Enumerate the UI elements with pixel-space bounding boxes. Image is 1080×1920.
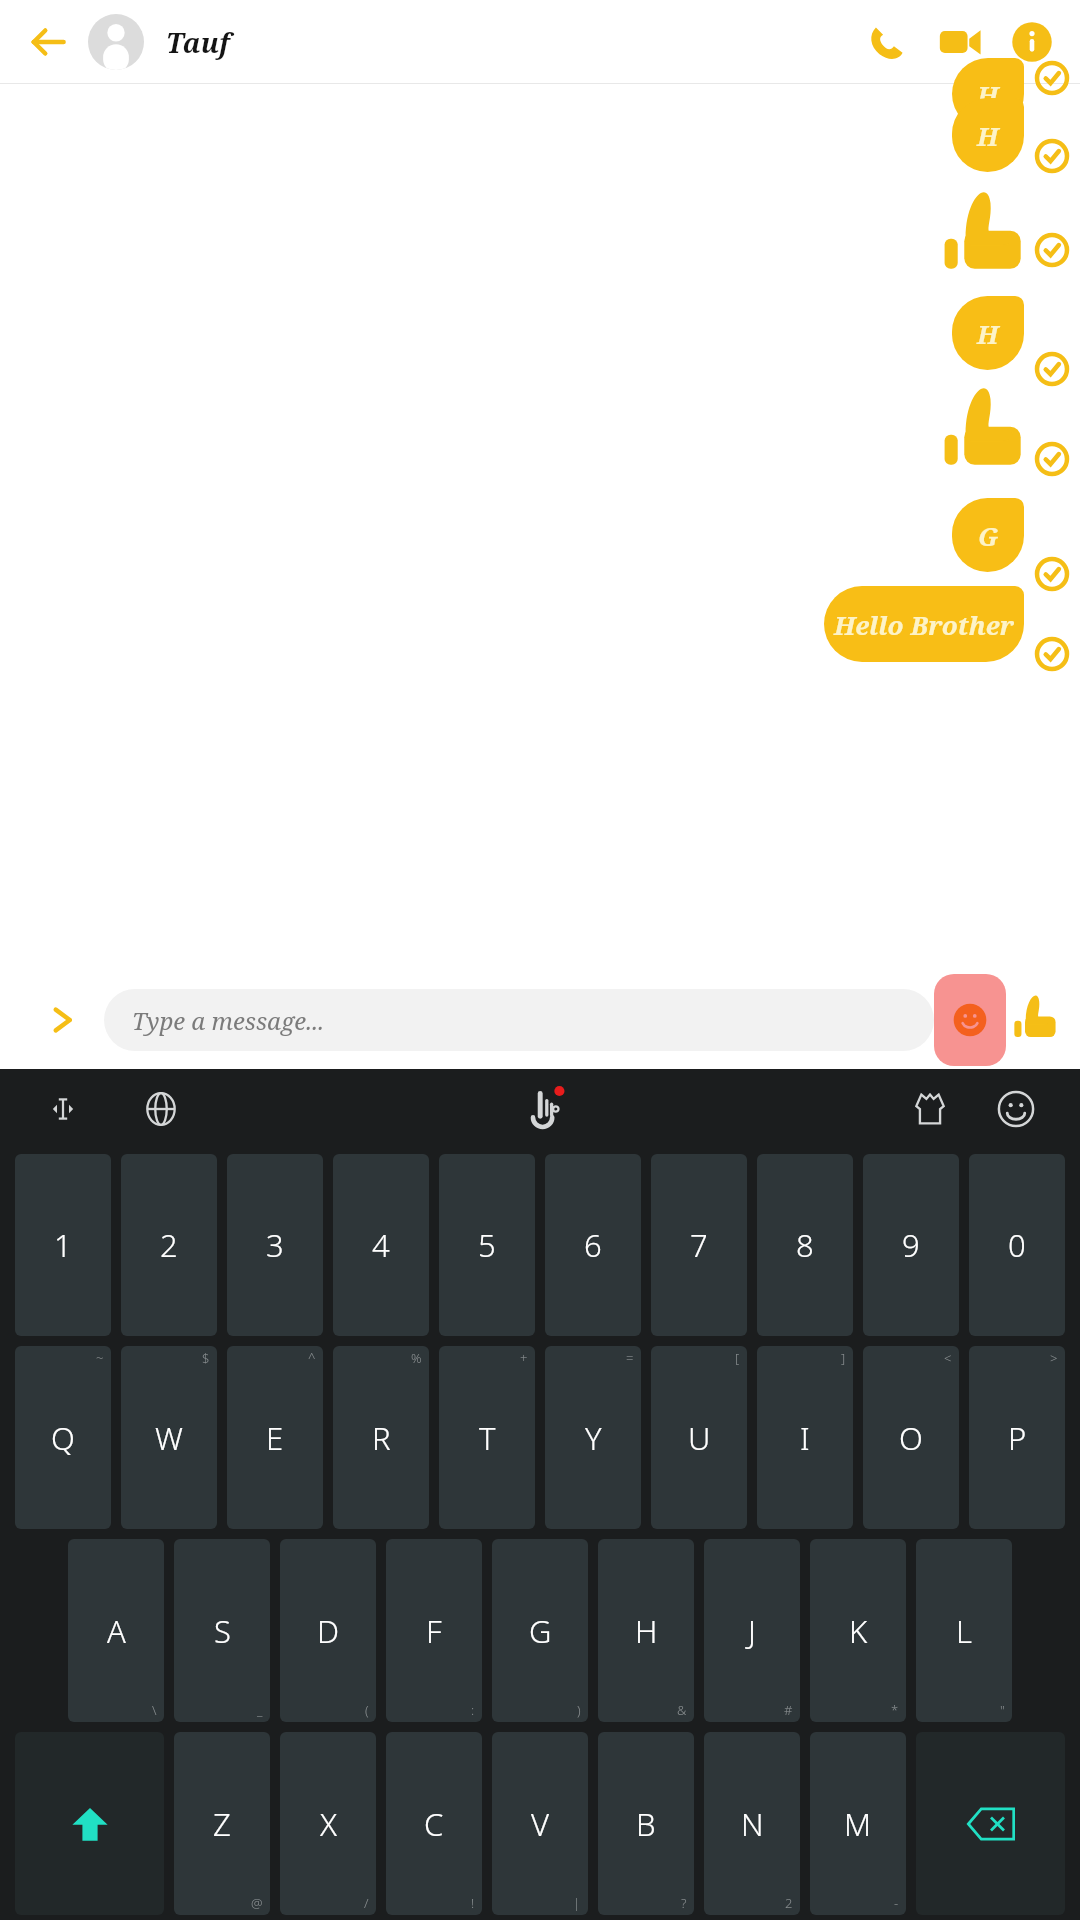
button[interactable]: F [386,1539,482,1722]
staticText: - [894,1894,899,1912]
staticText: ^ [308,1349,316,1367]
staticText: H [635,1610,658,1652]
staticText: Y [585,1417,602,1459]
button[interactable]: Back [20,14,76,70]
button[interactable]: M [810,1732,906,1915]
button[interactable]: Handwriting [515,1079,575,1139]
button[interactable]: 4 [333,1154,429,1336]
staticText: * [891,1701,899,1719]
button[interactable]: V [492,1732,588,1915]
button[interactable] [88,14,144,70]
staticText: ? [681,1894,687,1912]
button[interactable]: D [280,1539,376,1722]
staticText: F [426,1610,442,1652]
staticText: Q [51,1417,75,1459]
staticText: T [479,1417,496,1459]
button[interactable]: P [969,1346,1065,1529]
button[interactable]: H [952,296,1024,370]
staticText: D [317,1610,340,1652]
button[interactable]: C [386,1732,482,1915]
button[interactable]: K [810,1539,906,1722]
button[interactable]: 8 [757,1154,853,1336]
button[interactable]: Text cursor [36,1082,90,1136]
button[interactable]: 9 [863,1154,959,1336]
button[interactable]: 3 [227,1154,323,1336]
staticText: < [944,1349,952,1367]
staticText: 8 [796,1224,814,1266]
staticText: # [784,1701,793,1719]
button[interactable]: N [704,1732,800,1915]
button[interactable]: E [227,1346,323,1529]
button[interactable]: Call [860,16,912,68]
button[interactable]: G [952,498,1024,572]
button[interactable]: 6 [545,1154,641,1336]
button[interactable]: Stickers [902,1081,958,1137]
staticText: ( [365,1701,369,1719]
staticText: G [529,1610,552,1652]
button[interactable]: 5 [439,1154,535,1336]
button[interactable]: G [492,1539,588,1722]
button[interactable]: L [916,1539,1012,1722]
button[interactable]: Info [1006,16,1058,68]
staticText: U [688,1417,711,1459]
button[interactable]: Emoji [934,971,1006,1069]
staticText: 2 [785,1894,793,1912]
button[interactable]: R [333,1346,429,1529]
staticText: = [626,1349,634,1367]
button[interactable]: H [952,98,1024,172]
staticText: K [849,1610,868,1652]
staticText: Type a message... [132,1004,325,1037]
staticText: @ [251,1894,263,1912]
button[interactable]: Change language [134,1082,188,1136]
staticText: W [155,1417,183,1459]
staticText: 2 [160,1224,178,1266]
button[interactable]: S [174,1539,270,1722]
button[interactable]: B [598,1732,694,1915]
staticText: 3 [266,1224,284,1266]
staticText: + [520,1349,528,1367]
button[interactable]: Type a message... [104,989,934,1051]
button[interactable]: 1 [15,1154,111,1336]
button[interactable]: H [952,58,1024,130]
button[interactable]: W [121,1346,217,1529]
staticText: ! [471,1894,475,1912]
button[interactable]: 0 [969,1154,1065,1336]
staticText: | [573,1894,581,1912]
staticText: R [372,1417,391,1459]
button[interactable]: Q [15,1346,111,1529]
button[interactable]: A [68,1539,164,1722]
staticText: L [956,1610,972,1652]
button[interactable]: Z [174,1732,270,1915]
button[interactable]: T [439,1346,535,1529]
button[interactable]: X [280,1732,376,1915]
button[interactable]: Shift [15,1732,164,1915]
button[interactable]: Hello Brother [824,586,1024,662]
button[interactable]: I [757,1346,853,1529]
staticText: B [636,1803,656,1845]
staticText: : [471,1701,475,1719]
button[interactable]: 2 [121,1154,217,1336]
button[interactable]: Video call [934,16,986,68]
button[interactable]: Backspace [916,1732,1065,1915]
staticText: N [741,1803,764,1845]
staticText: > [1050,1349,1058,1367]
staticText: & [677,1701,687,1719]
button[interactable]: U [651,1346,747,1529]
staticText: H [977,118,999,153]
staticText: I [800,1417,810,1459]
staticText: 9 [902,1224,920,1266]
staticText: $ [202,1349,210,1367]
button[interactable]: O [863,1346,959,1529]
button[interactable]: Send like [1006,992,1062,1048]
button[interactable]: Y [545,1346,641,1529]
button[interactable]: Emoji keyboard [988,1081,1044,1137]
staticText: _ [257,1701,263,1719]
staticText: J [748,1610,756,1652]
staticText: S [214,1610,231,1652]
button[interactable]: Expand [40,997,86,1043]
button[interactable]: J [704,1539,800,1722]
staticText: Hello Brother [834,607,1014,642]
staticText: X [320,1803,337,1845]
button[interactable]: H [598,1539,694,1722]
button[interactable]: 7 [651,1154,747,1336]
